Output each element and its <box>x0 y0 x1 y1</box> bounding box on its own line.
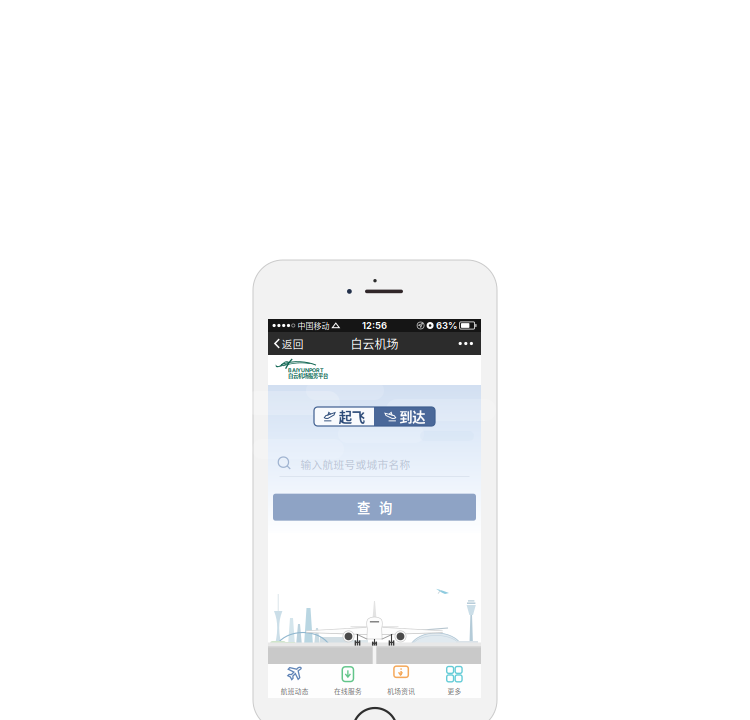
staticText: 在线服务 <box>334 686 362 696</box>
staticText: 输入航班号或城市名称 <box>300 456 410 472</box>
button[interactable]: 更多 <box>428 664 481 698</box>
staticText: 白云机场服务平台 <box>288 372 328 379</box>
staticText: 63% <box>436 320 457 331</box>
staticText: 机场资讯 <box>387 686 415 696</box>
button[interactable]: 起飞 <box>314 407 374 426</box>
button[interactable]: 机场资讯 <box>374 664 428 698</box>
staticText: 查 询 <box>357 497 392 517</box>
staticText: BAIYUNPORT <box>288 367 324 374</box>
staticText: 起飞 <box>339 407 365 426</box>
staticText: 更多 <box>447 686 461 696</box>
button[interactable]: 航班动态 <box>268 664 321 698</box>
staticText: 航班动态 <box>281 686 309 696</box>
button[interactable]: 查 询 <box>273 494 476 521</box>
staticText: 到达 <box>399 407 425 426</box>
staticText: 12:56 <box>362 320 387 331</box>
button[interactable]: More options <box>452 332 480 355</box>
staticText: 中国移动 <box>297 320 329 331</box>
staticText: 返回 <box>282 336 304 351</box>
button[interactable]: 到达 <box>374 407 435 426</box>
button[interactable]: 返回 <box>269 332 309 355</box>
button[interactable]: 在线服务 <box>321 664 374 698</box>
staticText: 白云机场 <box>350 335 398 352</box>
